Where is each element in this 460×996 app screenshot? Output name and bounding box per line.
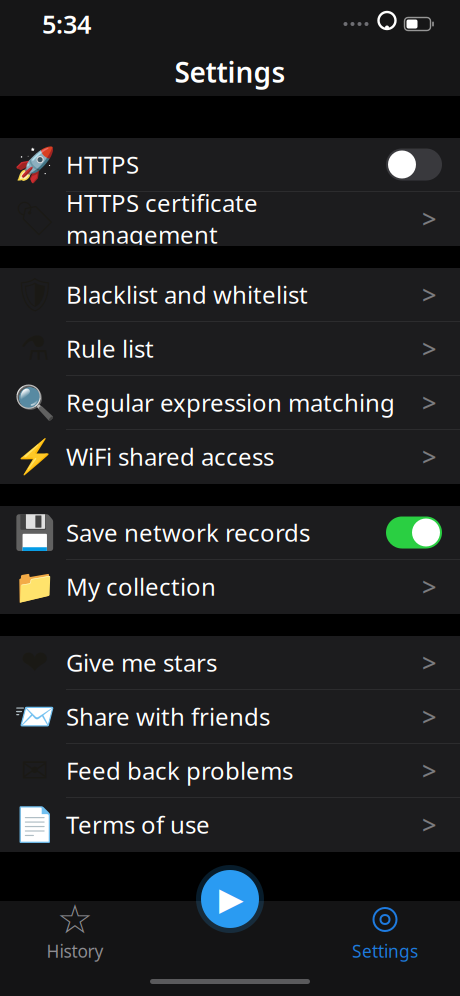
staticText: ▶ xyxy=(219,881,244,917)
staticText: Regular expression matching xyxy=(66,387,395,418)
button[interactable]: Start xyxy=(201,870,259,928)
button[interactable]: ⚡ xyxy=(0,430,460,484)
staticText: > xyxy=(422,278,436,311)
staticText: ⚡ xyxy=(14,437,56,476)
button[interactable]: ⚗ xyxy=(0,322,460,376)
staticText: ⚗ xyxy=(20,330,50,367)
button[interactable]: 🔍 xyxy=(0,376,460,430)
button[interactable]: Settings xyxy=(310,905,460,963)
button[interactable]: 🏷 xyxy=(0,192,460,246)
button[interactable]: 🛡 xyxy=(0,268,460,322)
staticText: 📨 xyxy=(14,697,56,736)
button[interactable]: 📁 xyxy=(0,560,460,614)
staticText: 💾 xyxy=(14,513,56,552)
staticText: > xyxy=(422,202,436,235)
staticText: > xyxy=(422,754,436,787)
staticText: HTTPS xyxy=(66,149,139,180)
staticText: > xyxy=(422,386,436,419)
staticText: ✉ xyxy=(21,752,49,789)
staticText: > xyxy=(422,700,436,733)
staticText: 5:34 xyxy=(42,7,91,41)
button[interactable]: ☆ xyxy=(0,905,150,963)
button[interactable]: ✉ xyxy=(0,744,460,798)
staticText: My collection xyxy=(66,571,216,602)
staticText: ☆ xyxy=(57,897,93,942)
staticText: Share with friends xyxy=(66,701,270,732)
staticText: ❤ xyxy=(21,644,49,681)
button[interactable]: 📨 xyxy=(0,690,460,744)
staticText: Give me stars xyxy=(66,647,217,678)
staticText: History xyxy=(46,939,103,962)
staticText: Terms of use xyxy=(66,809,210,840)
staticText: > xyxy=(422,570,436,603)
staticText: 📁 xyxy=(14,567,56,606)
staticText: > xyxy=(422,440,436,473)
staticText: Settings xyxy=(174,53,285,91)
staticText: Blacklist and whitelist xyxy=(66,279,308,310)
staticText: Settings xyxy=(352,939,418,962)
staticText: 🔍 xyxy=(14,383,56,422)
staticText: Save network records xyxy=(66,517,310,548)
staticText: > xyxy=(422,332,436,365)
staticText: > xyxy=(422,808,436,841)
button[interactable]: 💾 xyxy=(0,506,460,560)
staticText: Rule list xyxy=(66,333,154,364)
staticText: 📄 xyxy=(14,805,56,844)
button[interactable]: 📄 xyxy=(0,798,460,852)
staticText: 🛡 xyxy=(14,275,56,314)
staticText: 🚀 xyxy=(14,145,56,184)
staticText: WiFi shared access xyxy=(66,441,274,472)
button[interactable]: 🚀 xyxy=(0,138,460,192)
button[interactable]: ❤ xyxy=(0,636,460,690)
staticText: Feed back problems xyxy=(66,755,293,786)
staticText: HTTPS certificate management xyxy=(66,187,258,250)
staticText: > xyxy=(422,646,436,679)
